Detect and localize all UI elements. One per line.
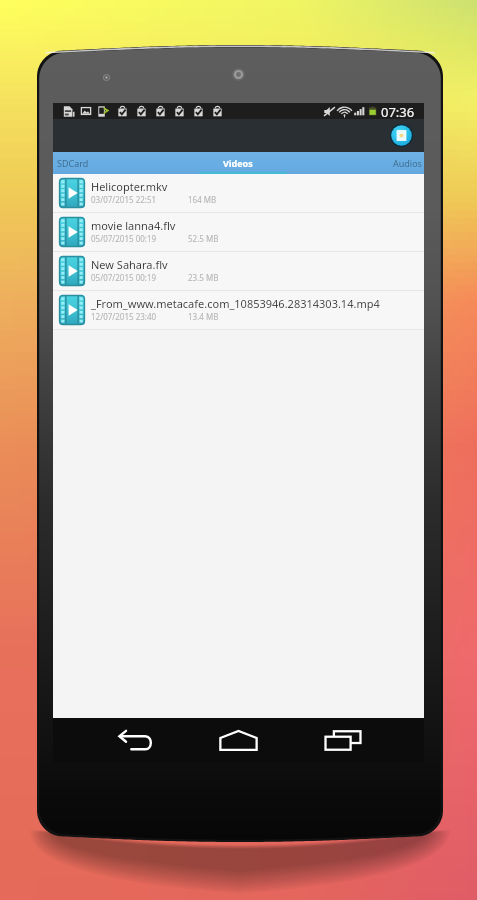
button[interactable]: Home — [216, 718, 260, 762]
staticText: 13.4 MB — [188, 311, 219, 322]
button[interactable]: Back — [113, 718, 157, 762]
staticText: _From_www.metacafe.com_10853946.28314303… — [91, 296, 380, 311]
button: Back — [53, 718, 424, 762]
staticText: New Sahara.flv — [91, 257, 168, 272]
button[interactable]: Videos — [176, 152, 300, 174]
button[interactable]: New Sahara.flv — [53, 252, 424, 291]
staticText: 03/07/2015 22:51 — [91, 194, 157, 205]
staticText: 07:36 — [381, 103, 415, 119]
button[interactable]: Recents — [321, 718, 365, 762]
staticText: 52.5 MB — [188, 233, 219, 244]
button[interactable]: Video player app — [390, 124, 413, 147]
button[interactable]: movie lanna4.flv — [53, 213, 424, 252]
button[interactable]: _From_www.metacafe.com_10853946.28314303… — [53, 291, 424, 330]
button[interactable]: Helicopter.mkv — [53, 174, 424, 213]
staticText: Videos — [223, 157, 253, 169]
staticText: 12/07/2015 23:40 — [91, 311, 157, 322]
staticText: movie lanna4.flv — [91, 218, 176, 233]
staticText: Audios — [393, 157, 422, 169]
staticText: SDCard — [57, 157, 89, 169]
button[interactable]: Audios — [300, 152, 424, 174]
staticText: 164 MB — [188, 194, 217, 205]
staticText: 23.5 MB — [188, 272, 219, 283]
button[interactable]: SDCard — [53, 152, 176, 174]
staticText: 05/07/2015 00:19 — [91, 272, 157, 283]
staticText: 05/07/2015 00:19 — [91, 233, 157, 244]
staticText: Helicopter.mkv — [91, 179, 168, 194]
